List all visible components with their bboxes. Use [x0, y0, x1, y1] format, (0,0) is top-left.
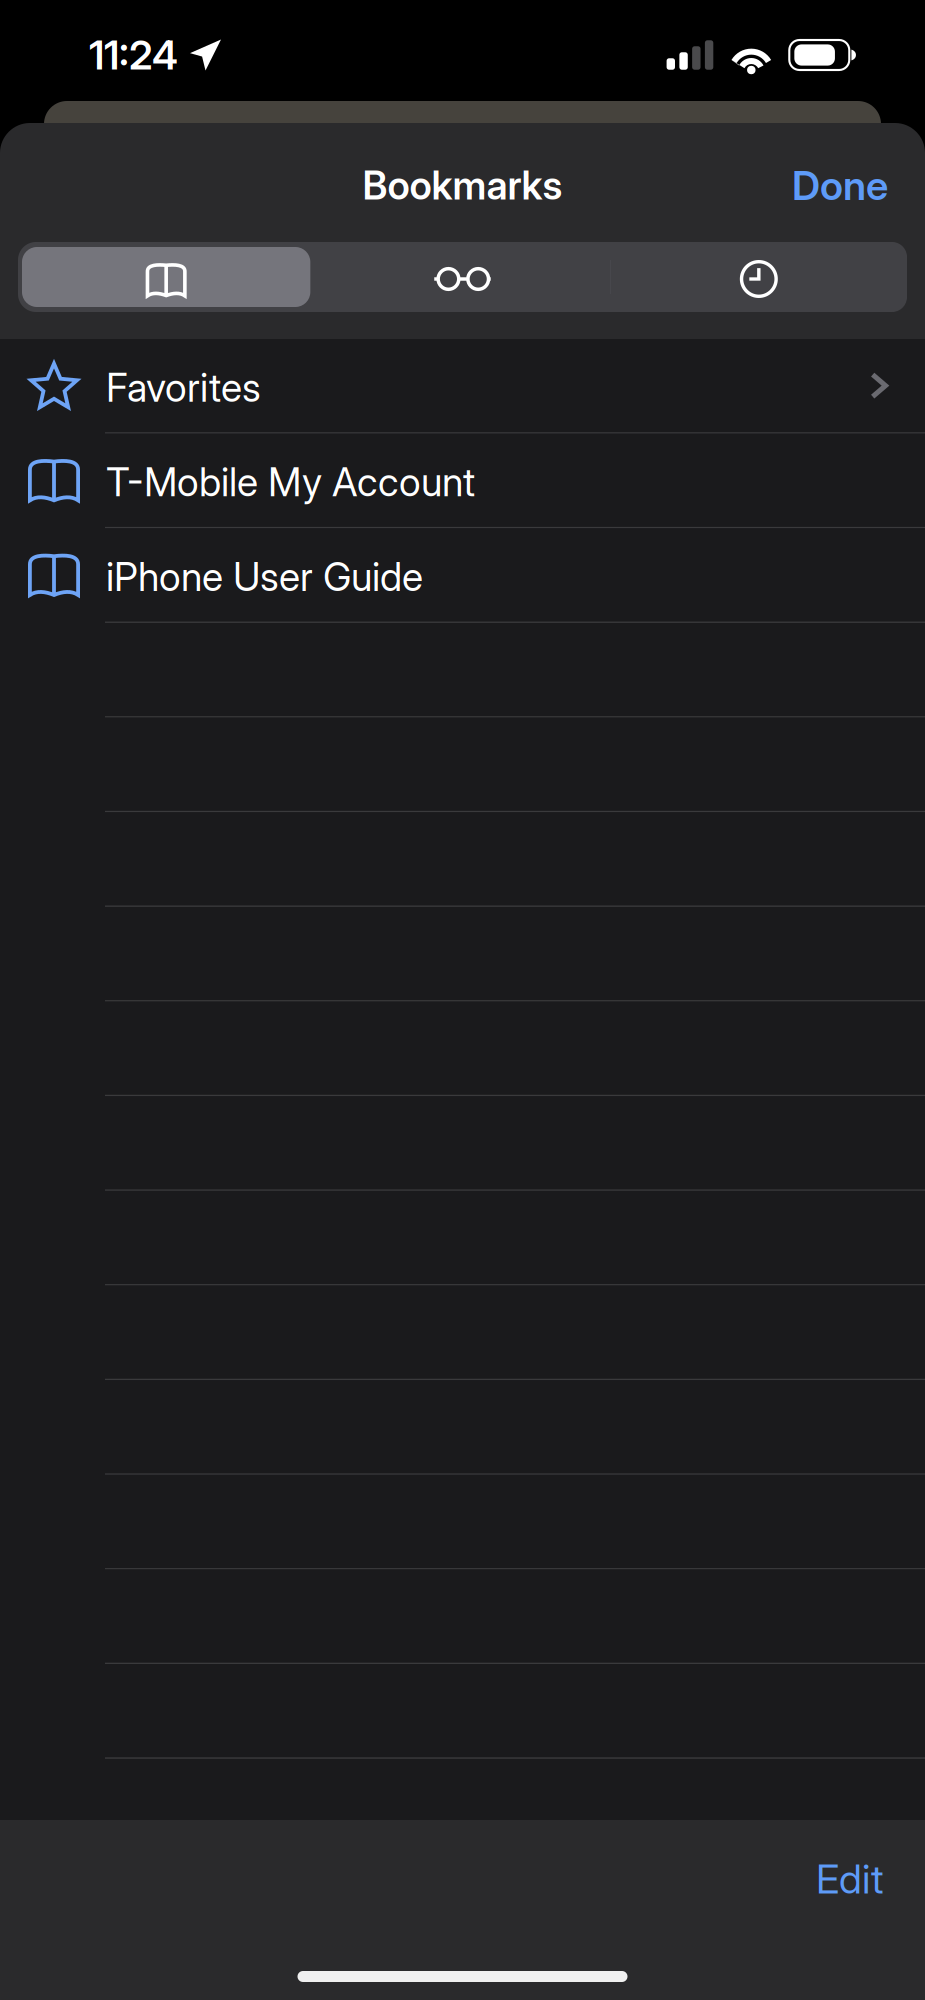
staticText: 11:24: [89, 31, 178, 79]
staticText: iPhone User Guide: [106, 553, 423, 600]
button[interactable]: Done: [766, 143, 925, 222]
button[interactable]: Bookmarks: [18, 242, 314, 312]
staticText: Bookmarks: [362, 162, 562, 209]
button[interactable]: iPhone User Guide: [0, 528, 925, 623]
staticText: T-Mobile My Account: [106, 459, 475, 506]
staticText: Favorites: [106, 364, 261, 411]
button[interactable]: Reading List: [314, 242, 611, 312]
staticText: Done: [792, 161, 888, 210]
staticText: Edit: [816, 1855, 884, 1903]
button[interactable]: Favorites: [0, 339, 925, 434]
button[interactable]: T-Mobile My Account: [0, 434, 925, 528]
button[interactable]: Edit: [786, 1834, 925, 1914]
button[interactable]: History: [611, 242, 907, 312]
